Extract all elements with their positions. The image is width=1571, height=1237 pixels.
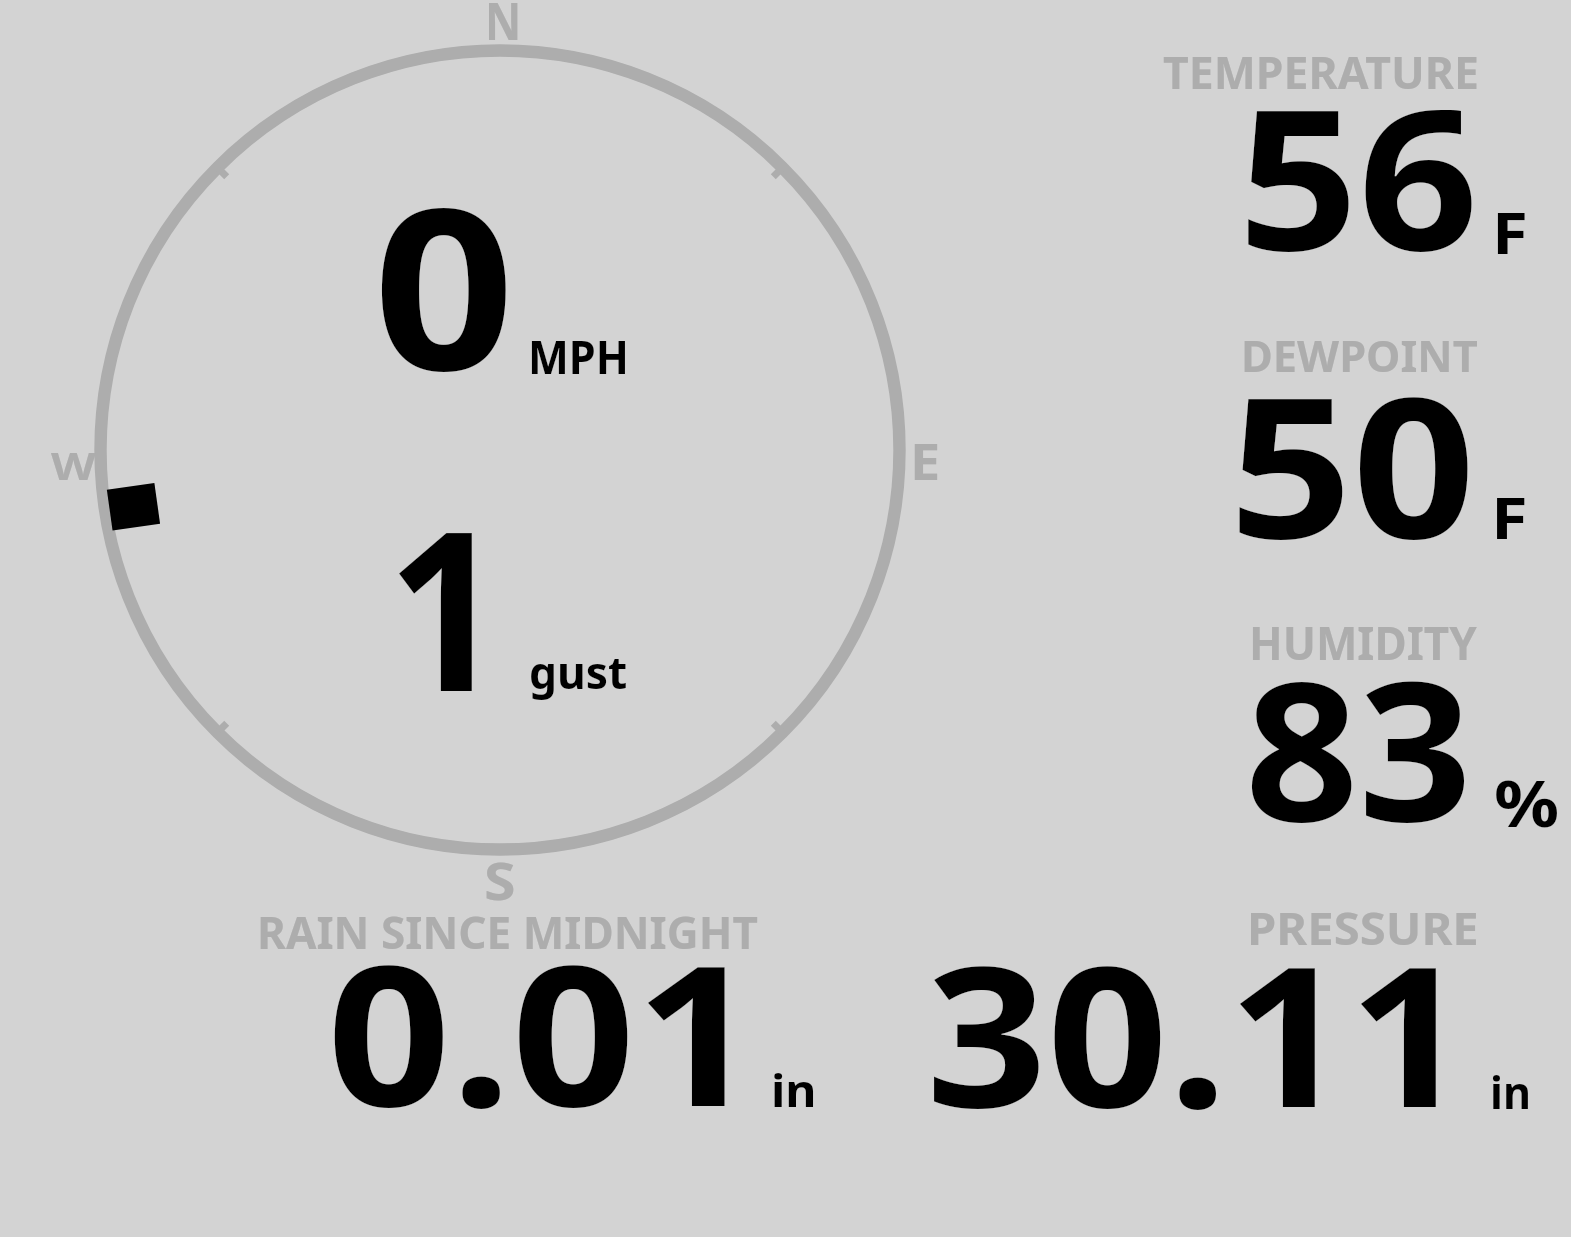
staticText: N <box>485 0 521 55</box>
staticText: DEWPOINT <box>1241 327 1478 385</box>
staticText: 50 <box>1229 331 1476 576</box>
button[interactable]: RAIN SINCE MIDNIGHT <box>240 900 840 1130</box>
staticText: HUMIDITY <box>1249 610 1477 673</box>
button[interactable]: PRESSURE <box>900 900 1571 1130</box>
staticText: F <box>1491 477 1528 556</box>
staticText: % <box>1494 758 1560 846</box>
staticText: W <box>51 439 96 491</box>
staticText: TEMPERATURE <box>1163 40 1480 102</box>
staticText: 0 <box>373 133 515 435</box>
staticText: S <box>484 845 516 915</box>
staticText: 56 <box>1238 44 1478 299</box>
staticText: in <box>1490 1062 1531 1122</box>
button[interactable]: HUMIDITY <box>1120 605 1571 855</box>
staticText: 1 <box>387 455 505 755</box>
staticText: gust <box>529 641 627 702</box>
staticText: 0.01 <box>327 900 759 1130</box>
staticText: MPH <box>528 324 629 387</box>
staticText: F <box>1492 192 1528 271</box>
button[interactable]: Wind direction compass, 0 MPH, 1 gust <box>0 0 1010 915</box>
staticText: in <box>771 1058 817 1120</box>
staticText: PRESSURE <box>1247 897 1479 958</box>
staticText: RAIN SINCE MIDNIGHT <box>257 902 758 962</box>
button[interactable]: DEWPOINT <box>1120 320 1571 565</box>
button[interactable]: TEMPERATURE <box>1120 30 1571 285</box>
staticText: 30.11 <box>926 900 1470 1130</box>
staticText: 83 <box>1245 615 1472 865</box>
staticText: E <box>910 426 941 494</box>
